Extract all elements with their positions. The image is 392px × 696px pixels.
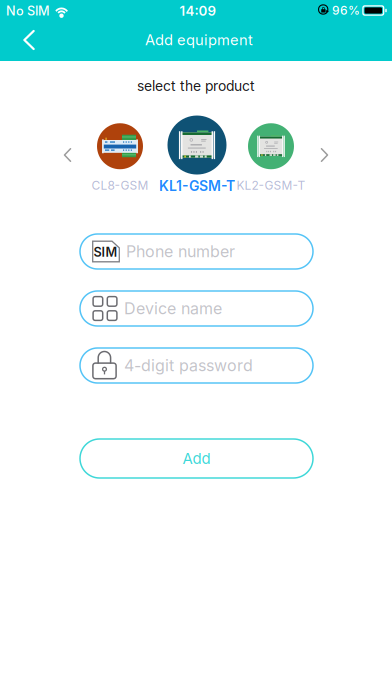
staticText: Device name	[124, 299, 222, 318]
button[interactable]: SIM	[80, 234, 313, 269]
staticText: 96%	[332, 3, 360, 18]
button[interactable]: Previous product	[52, 138, 82, 172]
staticText: 4-digit password	[124, 356, 253, 375]
button[interactable]: Device name	[80, 291, 313, 326]
button[interactable]: CL8-GSM	[88, 122, 152, 194]
staticText: KL1-GSM-T	[159, 177, 235, 194]
staticText: Add	[182, 449, 210, 468]
staticText: 14:09	[179, 3, 216, 19]
button[interactable]: KL2-GSM-T	[234, 122, 308, 194]
button[interactable]: Add	[80, 439, 313, 478]
staticText: select the product	[137, 78, 255, 94]
staticText: KL2-GSM-T	[236, 178, 305, 193]
staticText: Phone number	[126, 242, 235, 261]
staticText: Add equipment	[145, 31, 253, 49]
button[interactable]: KL1-GSM-T	[157, 116, 237, 194]
button[interactable]: 4-digit password	[80, 348, 313, 383]
staticText: SIM	[93, 244, 117, 260]
staticText: No SIM	[6, 3, 50, 19]
button[interactable]: Back	[7, 20, 51, 60]
button[interactable]: Next product	[309, 138, 339, 172]
staticText: CL8-GSM	[91, 178, 148, 193]
